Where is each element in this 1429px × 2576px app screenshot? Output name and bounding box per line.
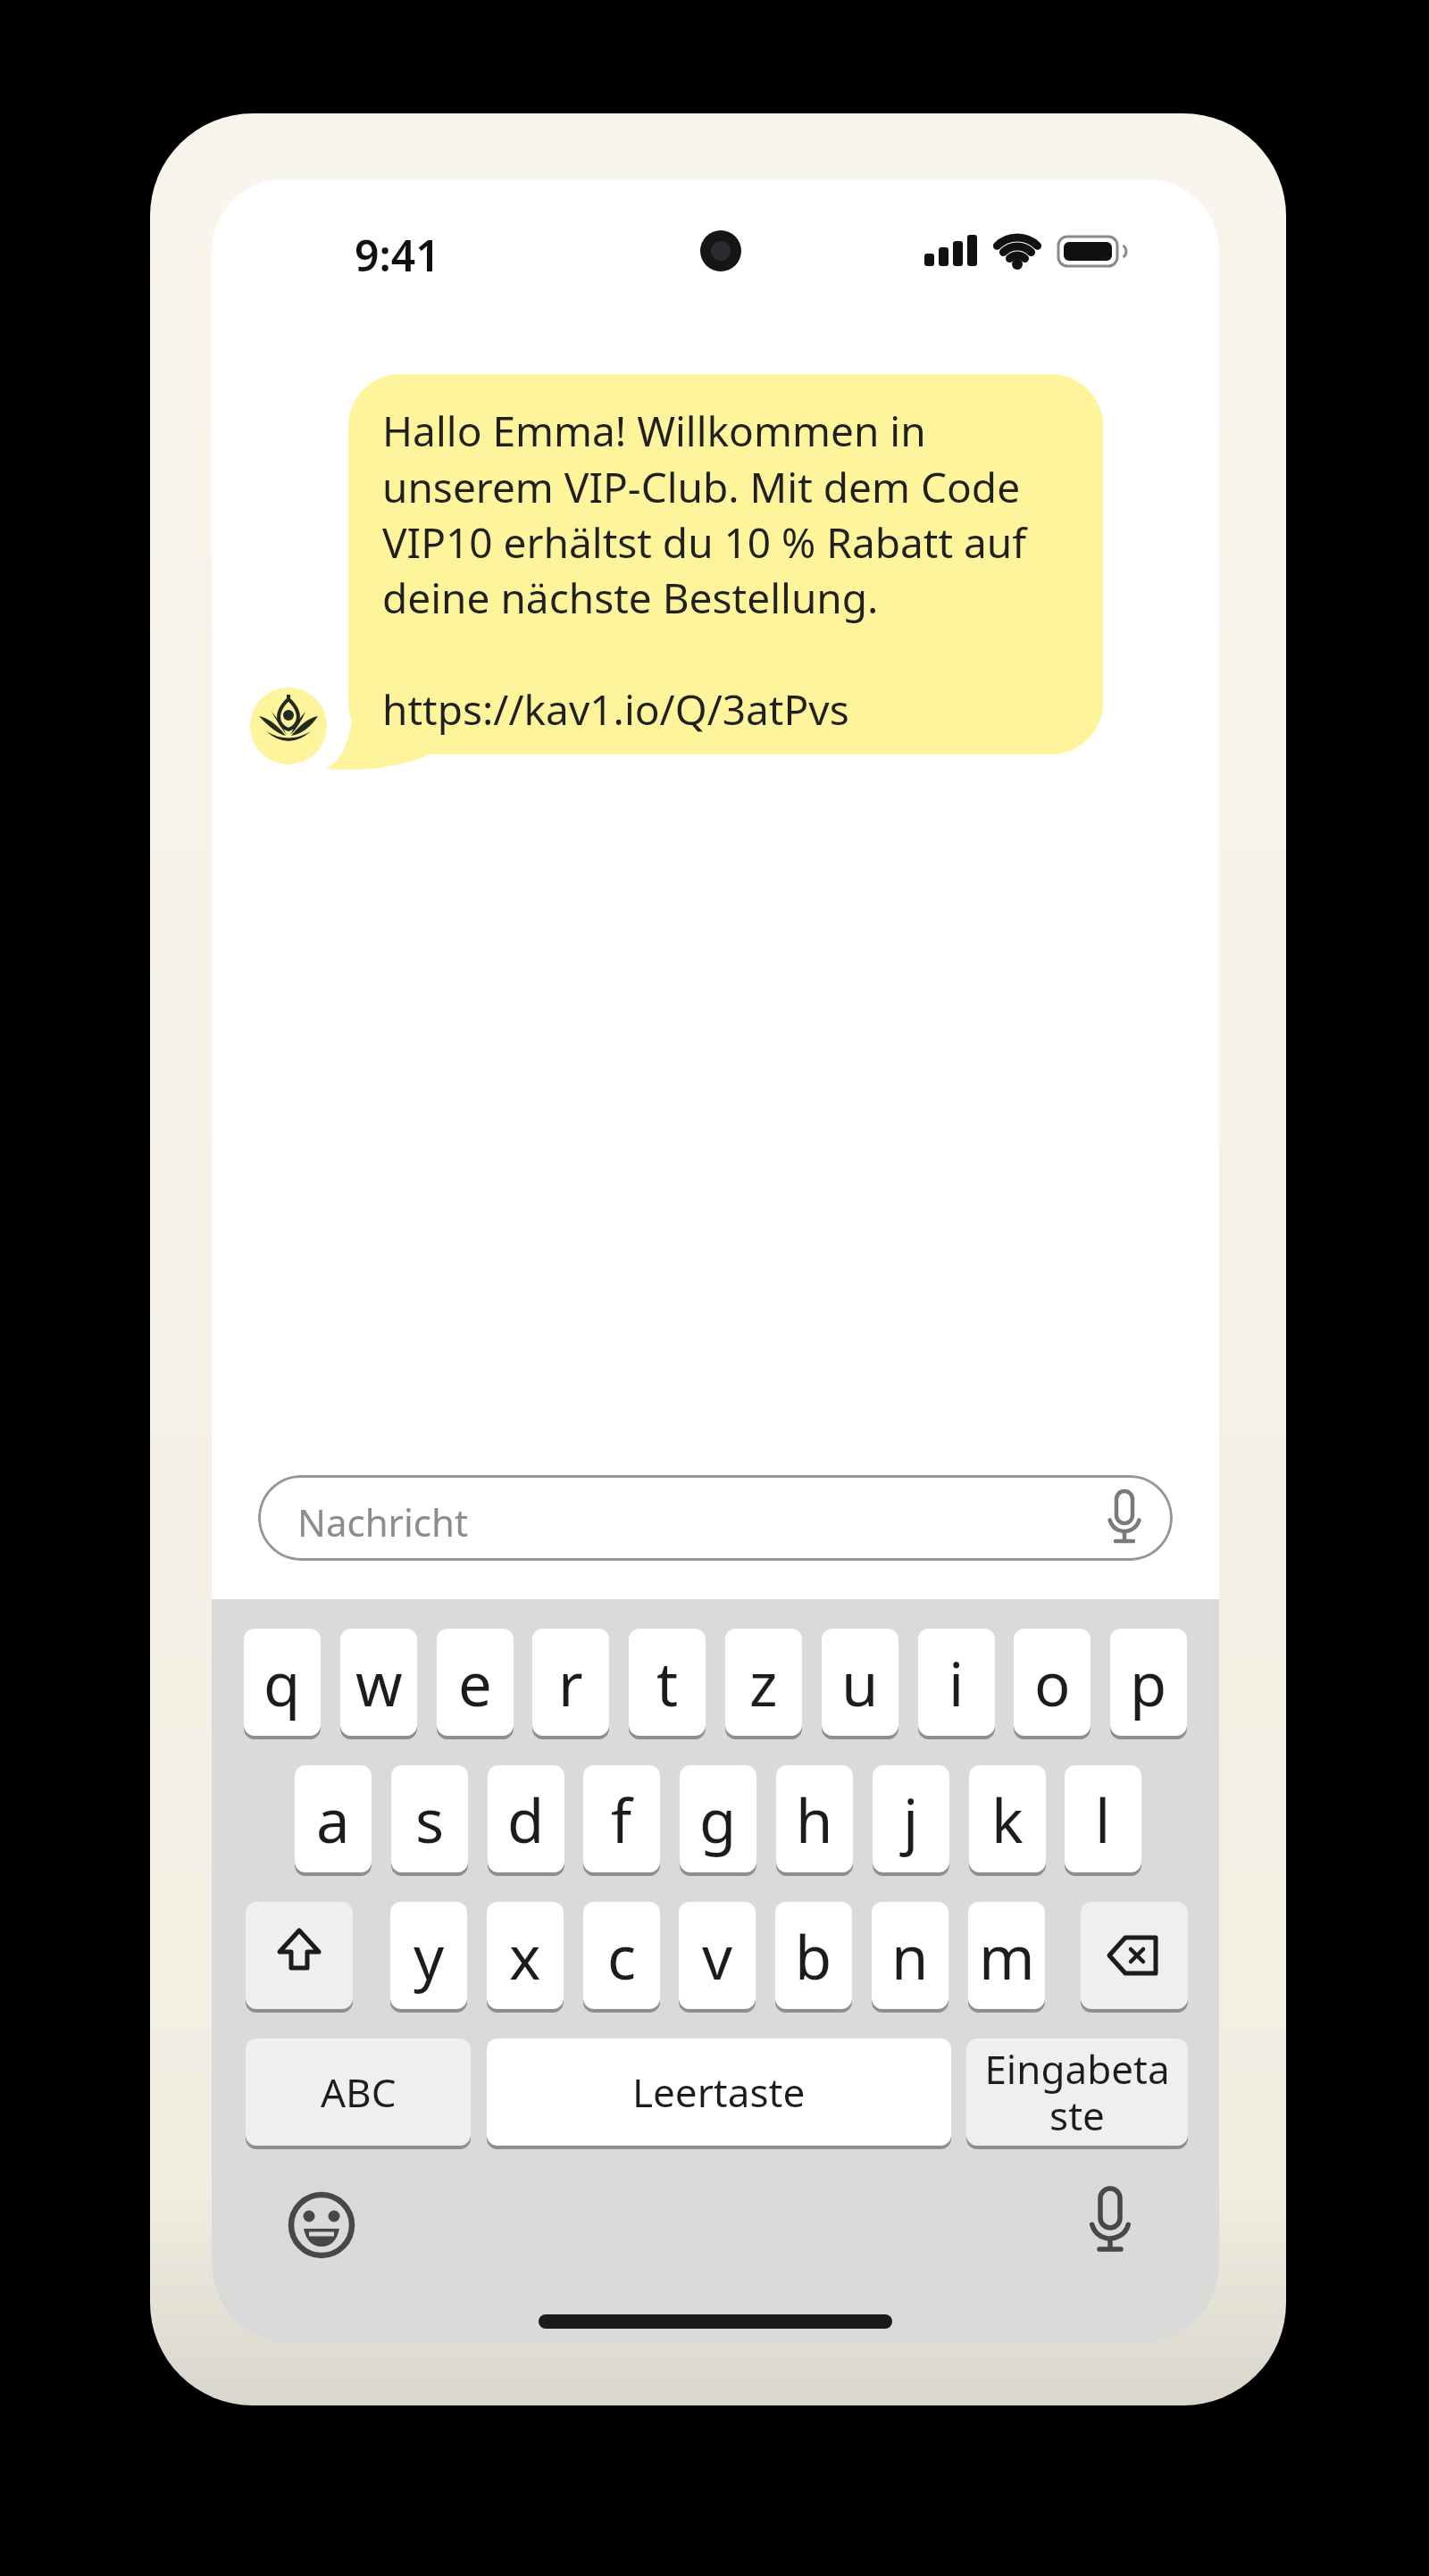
button[interactable] (288, 2191, 355, 2259)
button[interactable] (1079, 2187, 1141, 2263)
staticText: https://kav1.io/Q/3atPvs (382, 681, 849, 738)
button[interactable]: w (340, 1629, 417, 1736)
staticText: n (891, 1915, 929, 1997)
button[interactable]: Leertaste (487, 2038, 951, 2146)
button[interactable]: l (1065, 1765, 1141, 1872)
staticText: l (1095, 1779, 1111, 1860)
button[interactable]: h (776, 1765, 853, 1872)
staticText: a (316, 1779, 350, 1860)
staticText: Leertaste (632, 2065, 806, 2119)
staticText: w (355, 1642, 403, 1723)
staticText: c (607, 1915, 637, 1997)
staticText: x (509, 1915, 541, 1997)
button[interactable]: k (969, 1765, 1046, 1872)
staticText: s (415, 1779, 445, 1860)
button[interactable]: z (725, 1629, 802, 1736)
staticText: g (699, 1779, 737, 1860)
button[interactable]: d (488, 1765, 564, 1872)
staticText: y (414, 1915, 445, 1997)
button[interactable]: e (437, 1629, 514, 1736)
staticText: k (991, 1779, 1024, 1860)
button[interactable]: x (487, 1902, 564, 2009)
staticText: e (458, 1642, 492, 1723)
button[interactable]: i (918, 1629, 995, 1736)
button[interactable]: c (583, 1902, 660, 2009)
staticText: r (558, 1642, 583, 1723)
button[interactable]: s (391, 1765, 468, 1872)
button[interactable]: p (1110, 1629, 1187, 1736)
button[interactable]: t (629, 1629, 706, 1736)
button[interactable]: b (775, 1902, 852, 2009)
button[interactable]: Nachricht (258, 1475, 1173, 1561)
staticText: o (1034, 1642, 1071, 1723)
staticText: Nachricht (297, 1496, 469, 1547)
staticText: f (611, 1779, 632, 1860)
button[interactable]: Hallo Emma! Willkommen in unserem VIP-Cl… (348, 374, 1103, 754)
staticText: u (841, 1642, 879, 1723)
staticText: p (1130, 1642, 1167, 1723)
button[interactable]: f (583, 1765, 660, 1872)
button[interactable]: j (873, 1765, 949, 1872)
staticText: i (948, 1642, 965, 1723)
staticText: t (656, 1642, 679, 1723)
staticText: v (702, 1915, 733, 1997)
staticText: Eingabeta ste (984, 2042, 1170, 2142)
staticText: ABC (321, 2065, 397, 2119)
button[interactable]: ABC (246, 2038, 471, 2146)
button[interactable]: m (968, 1902, 1045, 2009)
staticText: j (903, 1779, 919, 1860)
staticText: 9:41 (355, 226, 440, 284)
staticText: z (749, 1642, 778, 1723)
button[interactable] (246, 1902, 353, 2009)
staticText: d (507, 1779, 545, 1860)
button[interactable]: y (390, 1902, 467, 2009)
button[interactable] (1081, 1902, 1188, 2009)
button[interactable]: Eingabeta ste (966, 2038, 1188, 2146)
button[interactable]: u (822, 1629, 898, 1736)
button[interactable]: v (679, 1902, 756, 2009)
staticText: q (263, 1642, 301, 1723)
button[interactable]: n (872, 1902, 948, 2009)
staticText: Hallo Emma! Willkommen in unserem VIP-Cl… (382, 403, 1027, 625)
button[interactable]: r (532, 1629, 609, 1736)
button[interactable]: g (680, 1765, 756, 1872)
staticText: h (796, 1779, 833, 1860)
staticText: b (795, 1915, 832, 1997)
staticText: m (979, 1915, 1035, 1997)
button[interactable]: o (1014, 1629, 1091, 1736)
button[interactable]: a (295, 1765, 372, 1872)
button[interactable]: q (244, 1629, 321, 1736)
